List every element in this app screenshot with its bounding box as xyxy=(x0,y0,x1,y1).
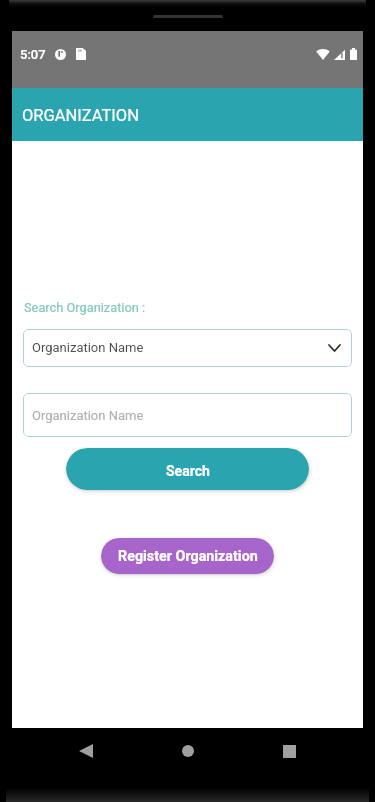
button[interactable]: Home xyxy=(171,734,205,768)
button[interactable]: Search xyxy=(66,448,309,490)
button[interactable]: Back xyxy=(69,734,103,768)
staticText: Organization Name xyxy=(32,340,144,355)
button[interactable]: Organization Name xyxy=(23,329,352,367)
button[interactable]: Recent apps xyxy=(272,734,306,768)
staticText: Register Organization xyxy=(118,548,258,565)
button[interactable]: Organization Name xyxy=(23,393,352,437)
button[interactable]: Register Organization xyxy=(101,538,274,574)
staticText: Search Organization : xyxy=(24,300,146,315)
staticText: Organization Name xyxy=(32,408,144,423)
staticText: 5:07 xyxy=(20,47,46,61)
staticText: Search xyxy=(166,463,210,479)
other: Expand dropdown xyxy=(329,345,340,351)
staticText: ORGANIZATION xyxy=(22,106,139,125)
